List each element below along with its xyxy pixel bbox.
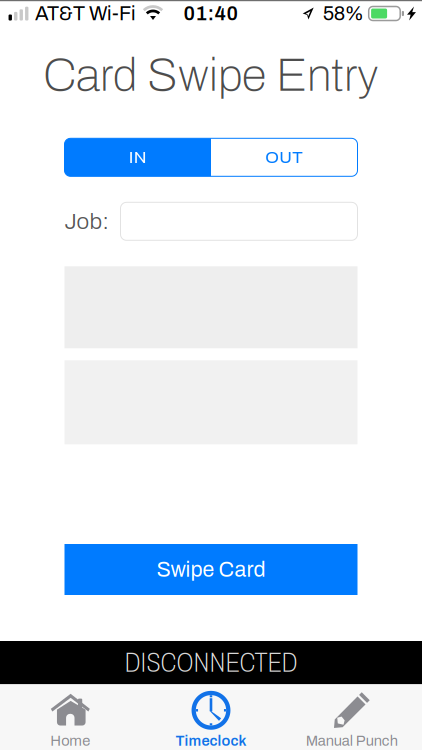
- staticText: 58%: [323, 3, 364, 24]
- staticText: 01:40: [183, 3, 238, 24]
- staticText: OUT: [265, 148, 303, 167]
- button[interactable]: Timeclock: [141, 685, 281, 750]
- button[interactable]: Manual Punch: [281, 685, 422, 750]
- button[interactable]: Swipe Card: [64, 544, 357, 595]
- staticText: Card Swipe Entry: [43, 51, 379, 100]
- staticText: Job:: [64, 209, 108, 234]
- staticText: Timeclock: [175, 733, 246, 749]
- staticText: Home: [50, 733, 90, 749]
- staticText: Swipe Card: [156, 558, 265, 581]
- staticText: IN: [129, 148, 147, 167]
- staticText: DISCONNECTED: [124, 647, 297, 678]
- button[interactable]: Home: [0, 685, 141, 750]
- button[interactable]: IN: [64, 138, 211, 176]
- staticText: Manual Punch: [306, 733, 398, 749]
- staticText: AT&T Wi-Fi: [35, 3, 136, 24]
- button[interactable]: OUT: [211, 138, 357, 176]
